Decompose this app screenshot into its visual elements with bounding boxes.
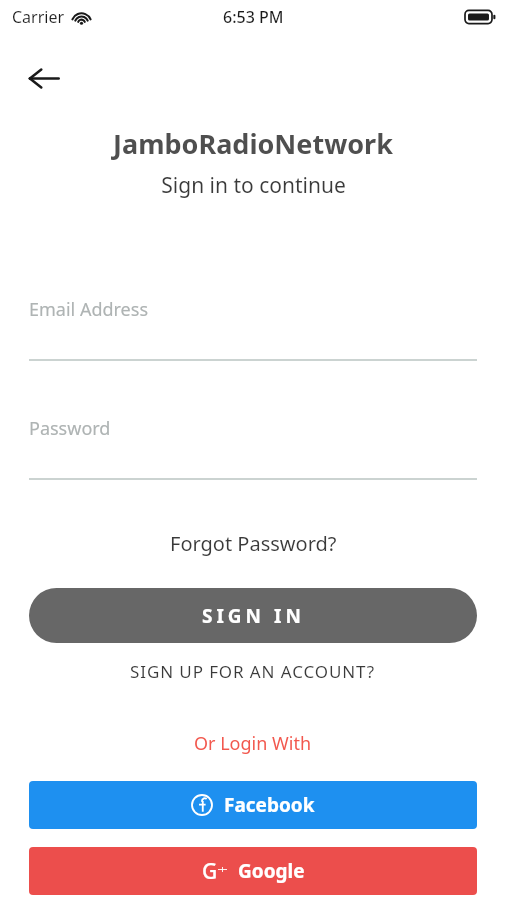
staticText: Forgot Password? xyxy=(170,530,337,557)
staticText: 6:53 PM xyxy=(223,6,284,28)
button[interactable]: Password xyxy=(29,406,477,480)
staticText: Or Login With xyxy=(194,731,312,756)
staticText: Google xyxy=(238,858,305,884)
staticText: SIGN IN xyxy=(202,603,305,629)
staticText: Facebook xyxy=(224,792,315,818)
button[interactable]: Forgot Password? xyxy=(160,526,347,561)
button[interactable]: Email Address xyxy=(29,287,477,361)
staticText: Sign in to continue xyxy=(161,171,346,200)
button[interactable]: Back xyxy=(18,52,70,104)
staticText: JamboRadioNetwork xyxy=(113,125,393,162)
staticText: G xyxy=(202,857,218,886)
button[interactable]: SIGN IN xyxy=(29,588,477,643)
button[interactable]: SIGN UP FOR AN ACCOUNT? xyxy=(120,656,386,687)
staticText: Password xyxy=(29,416,111,441)
button[interactable]: G xyxy=(29,847,477,895)
staticText: SIGN UP FOR AN ACCOUNT? xyxy=(130,660,376,683)
staticText: Carrier xyxy=(12,6,65,28)
button[interactable]: Facebook xyxy=(29,781,477,829)
staticText: Email Address xyxy=(29,297,149,322)
